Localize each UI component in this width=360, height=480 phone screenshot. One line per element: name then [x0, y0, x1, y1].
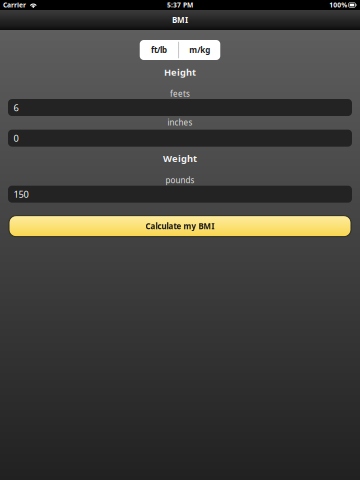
- button[interactable]: Calculate my BMI: [9, 216, 351, 237]
- staticText: 5:37 PM: [167, 1, 193, 9]
- staticText: pounds: [165, 175, 194, 185]
- staticText: Calculate my BMI: [145, 221, 214, 231]
- staticText: inches: [167, 117, 192, 128]
- staticText: 6: [13, 101, 18, 114]
- staticText: 0: [13, 132, 18, 144]
- button[interactable]: 150: [8, 186, 352, 203]
- staticText: BMI: [172, 15, 188, 25]
- staticText: Weight: [163, 152, 197, 164]
- staticText: Height: [164, 66, 196, 78]
- button[interactable]: m/kg: [179, 40, 220, 60]
- button[interactable]: ft/lb: [140, 40, 178, 60]
- staticText: feets: [170, 88, 190, 99]
- staticText: 150: [13, 188, 28, 200]
- button[interactable]: 6: [8, 99, 352, 116]
- staticText: ft/lb: [151, 45, 167, 55]
- staticText: 100%: [329, 1, 347, 9]
- staticText: m/kg: [189, 45, 210, 55]
- staticText: Carrier: [3, 1, 26, 9]
- button[interactable]: 0: [8, 130, 352, 147]
